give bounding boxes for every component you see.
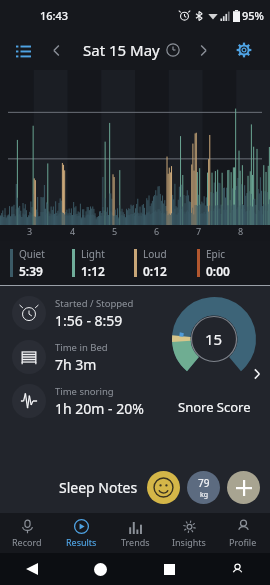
staticText: 15 bbox=[205, 329, 223, 349]
staticText: 3 bbox=[27, 225, 33, 237]
staticText: Started / Stopped bbox=[55, 297, 134, 310]
button[interactable]: Record bbox=[0, 519, 54, 548]
staticText: Sat 15 May bbox=[83, 40, 160, 60]
staticText: Results bbox=[66, 536, 97, 548]
staticText: 5 bbox=[112, 225, 118, 237]
staticText: 1:12 bbox=[81, 263, 105, 279]
staticText: 7 bbox=[196, 225, 202, 237]
button[interactable]: Results bbox=[54, 519, 108, 548]
staticText: 7h 3m bbox=[55, 355, 97, 374]
staticText: 1h 20m - 20% bbox=[55, 399, 144, 418]
staticText: Record bbox=[12, 536, 42, 548]
staticText: 4 bbox=[70, 225, 76, 237]
staticText: 1:56 - 8:59 bbox=[55, 311, 123, 330]
button[interactable]: Epic bbox=[197, 247, 260, 279]
staticText: 95% bbox=[242, 8, 264, 23]
staticText: Light bbox=[81, 247, 105, 261]
button[interactable]: Time in Bed bbox=[12, 340, 158, 374]
staticText: 8 bbox=[238, 225, 244, 237]
button[interactable]: Light bbox=[72, 247, 134, 279]
staticText: 16:43 bbox=[40, 8, 69, 23]
button[interactable]: Sat 15 May bbox=[83, 40, 180, 60]
other: More bbox=[246, 363, 268, 385]
button[interactable]: Add note bbox=[227, 471, 260, 504]
staticText: 0:12 bbox=[143, 263, 167, 279]
button[interactable]: List bbox=[10, 37, 36, 63]
staticText: 79 bbox=[198, 476, 210, 490]
staticText: kg bbox=[200, 490, 209, 500]
button[interactable]: Next day bbox=[190, 37, 216, 63]
staticText: Epic bbox=[206, 247, 226, 261]
button[interactable]: Trends bbox=[108, 519, 162, 548]
button[interactable]: Mood bbox=[147, 471, 180, 504]
staticText: Trends bbox=[121, 536, 150, 548]
button[interactable]: Previous day bbox=[43, 37, 69, 63]
button[interactable]: Quiet bbox=[10, 247, 72, 279]
staticText: 5:39 bbox=[19, 263, 43, 279]
button[interactable]: Loud bbox=[134, 247, 197, 279]
staticText: 0:00 bbox=[206, 263, 230, 279]
button[interactable]: Weight 79 kg bbox=[187, 471, 220, 504]
staticText: Quiet bbox=[19, 247, 45, 261]
button[interactable]: Sleep Notes bbox=[59, 478, 138, 497]
staticText: Time snoring bbox=[55, 385, 114, 398]
button[interactable]: Insights bbox=[162, 519, 216, 548]
staticText: Insights bbox=[172, 536, 206, 548]
staticText: Snore Score bbox=[178, 398, 251, 416]
staticText: 6 bbox=[154, 225, 160, 237]
staticText: Time in Bed bbox=[55, 341, 108, 354]
button[interactable]: Time snoring bbox=[12, 384, 158, 418]
staticText: Profile bbox=[229, 536, 257, 548]
button[interactable]: Settings bbox=[230, 36, 258, 64]
button[interactable]: Started / Stopped bbox=[12, 296, 158, 330]
button[interactable]: 15 bbox=[158, 286, 270, 461]
button[interactable]: Profile bbox=[216, 519, 270, 548]
staticText: Loud bbox=[143, 247, 167, 261]
